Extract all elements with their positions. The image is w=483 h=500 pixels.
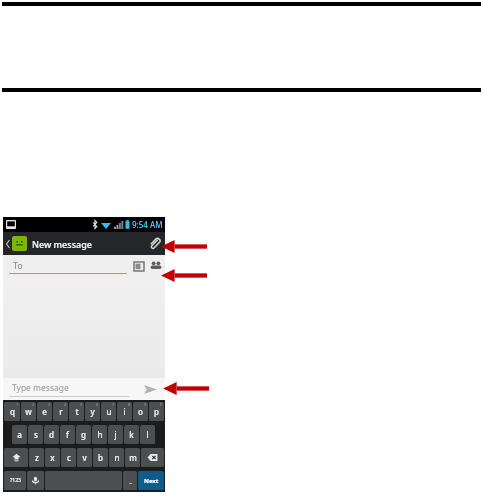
button[interactable]: j <box>108 425 123 444</box>
staticText: i <box>123 406 126 417</box>
staticText: 1 <box>16 402 19 407</box>
button[interactable]: Send <box>141 380 159 398</box>
staticText: Next <box>144 477 159 485</box>
button[interactable]: n <box>109 448 124 467</box>
button[interactable]: Shift <box>4 448 28 467</box>
staticText: c <box>67 452 71 463</box>
button[interactable]: c <box>61 448 76 467</box>
staticText: 0 <box>160 402 163 407</box>
button[interactable]: Back <box>3 232 12 255</box>
button[interactable]: Attach <box>143 232 165 255</box>
staticText: 9:54 AM <box>132 219 163 230</box>
staticText: 4 <box>64 402 67 407</box>
button[interactable]: Next <box>138 471 164 490</box>
button[interactable]: m <box>125 448 140 467</box>
button[interactable]: a <box>12 425 27 444</box>
staticText: k <box>129 429 134 440</box>
button[interactable]: 1 <box>4 402 20 421</box>
staticText: x <box>50 452 55 463</box>
button[interactable]: l <box>140 425 155 444</box>
button[interactable]: 8 <box>117 402 132 421</box>
staticText: o <box>138 406 143 417</box>
staticText: 5 <box>80 402 83 407</box>
staticText: j <box>114 429 117 440</box>
staticText: b <box>98 452 103 463</box>
button[interactable]: 5 <box>69 402 84 421</box>
button[interactable]: k <box>124 425 139 444</box>
button[interactable]: _ <box>123 471 137 490</box>
staticText: 2 <box>32 402 35 407</box>
staticText: z <box>35 452 39 463</box>
staticText: s <box>34 429 38 440</box>
button[interactable]: 7 <box>101 402 116 421</box>
staticText: 8 <box>128 402 131 407</box>
staticText: p <box>154 406 159 417</box>
button[interactable]: ?123 <box>4 471 26 490</box>
button[interactable]: x <box>45 448 60 467</box>
staticText: _ <box>129 477 132 485</box>
staticText: 3 <box>48 402 51 407</box>
staticText: a <box>17 429 22 440</box>
button[interactable]: 3 <box>37 402 52 421</box>
button[interactable]: 0 <box>149 402 164 421</box>
staticText: r <box>59 406 63 417</box>
staticText: l <box>146 429 149 440</box>
button[interactable]: 9 <box>133 402 148 421</box>
button[interactable]: v <box>77 448 92 467</box>
button[interactable]: 6 <box>85 402 100 421</box>
button[interactable]: b <box>93 448 108 467</box>
staticText: 6 <box>96 402 99 407</box>
button[interactable]: s <box>28 425 43 444</box>
button[interactable]: 4 <box>53 402 68 421</box>
staticText: To <box>13 259 23 271</box>
staticText: u <box>106 406 112 417</box>
button[interactable]: g <box>76 425 91 444</box>
staticText: Type message <box>12 382 69 394</box>
staticText: New message <box>32 238 92 250</box>
button[interactable]: f <box>60 425 75 444</box>
staticText: m <box>129 452 137 463</box>
button[interactable]: z <box>29 448 44 467</box>
staticText: d <box>49 429 54 440</box>
staticText: v <box>82 452 87 463</box>
staticText: t <box>75 406 79 417</box>
staticText: 7 <box>112 402 115 407</box>
button[interactable]: 2 <box>21 402 36 421</box>
staticText: f <box>66 429 69 440</box>
button[interactable]: Voice input <box>27 471 44 490</box>
staticText: e <box>42 406 47 417</box>
staticText: n <box>114 452 120 463</box>
staticText: h <box>97 429 103 440</box>
button[interactable]: h <box>92 425 107 444</box>
staticText: g <box>81 429 86 440</box>
button[interactable]: Backspace <box>141 448 164 467</box>
button[interactable]: Toggle input <box>133 260 145 272</box>
button[interactable]: Add contact <box>149 259 162 272</box>
staticText: y <box>90 406 95 417</box>
button[interactable]: d <box>44 425 59 444</box>
staticText: ?123 <box>10 477 21 484</box>
staticText: 9 <box>144 402 147 407</box>
staticText: w <box>25 406 32 417</box>
staticText: q <box>10 406 15 417</box>
